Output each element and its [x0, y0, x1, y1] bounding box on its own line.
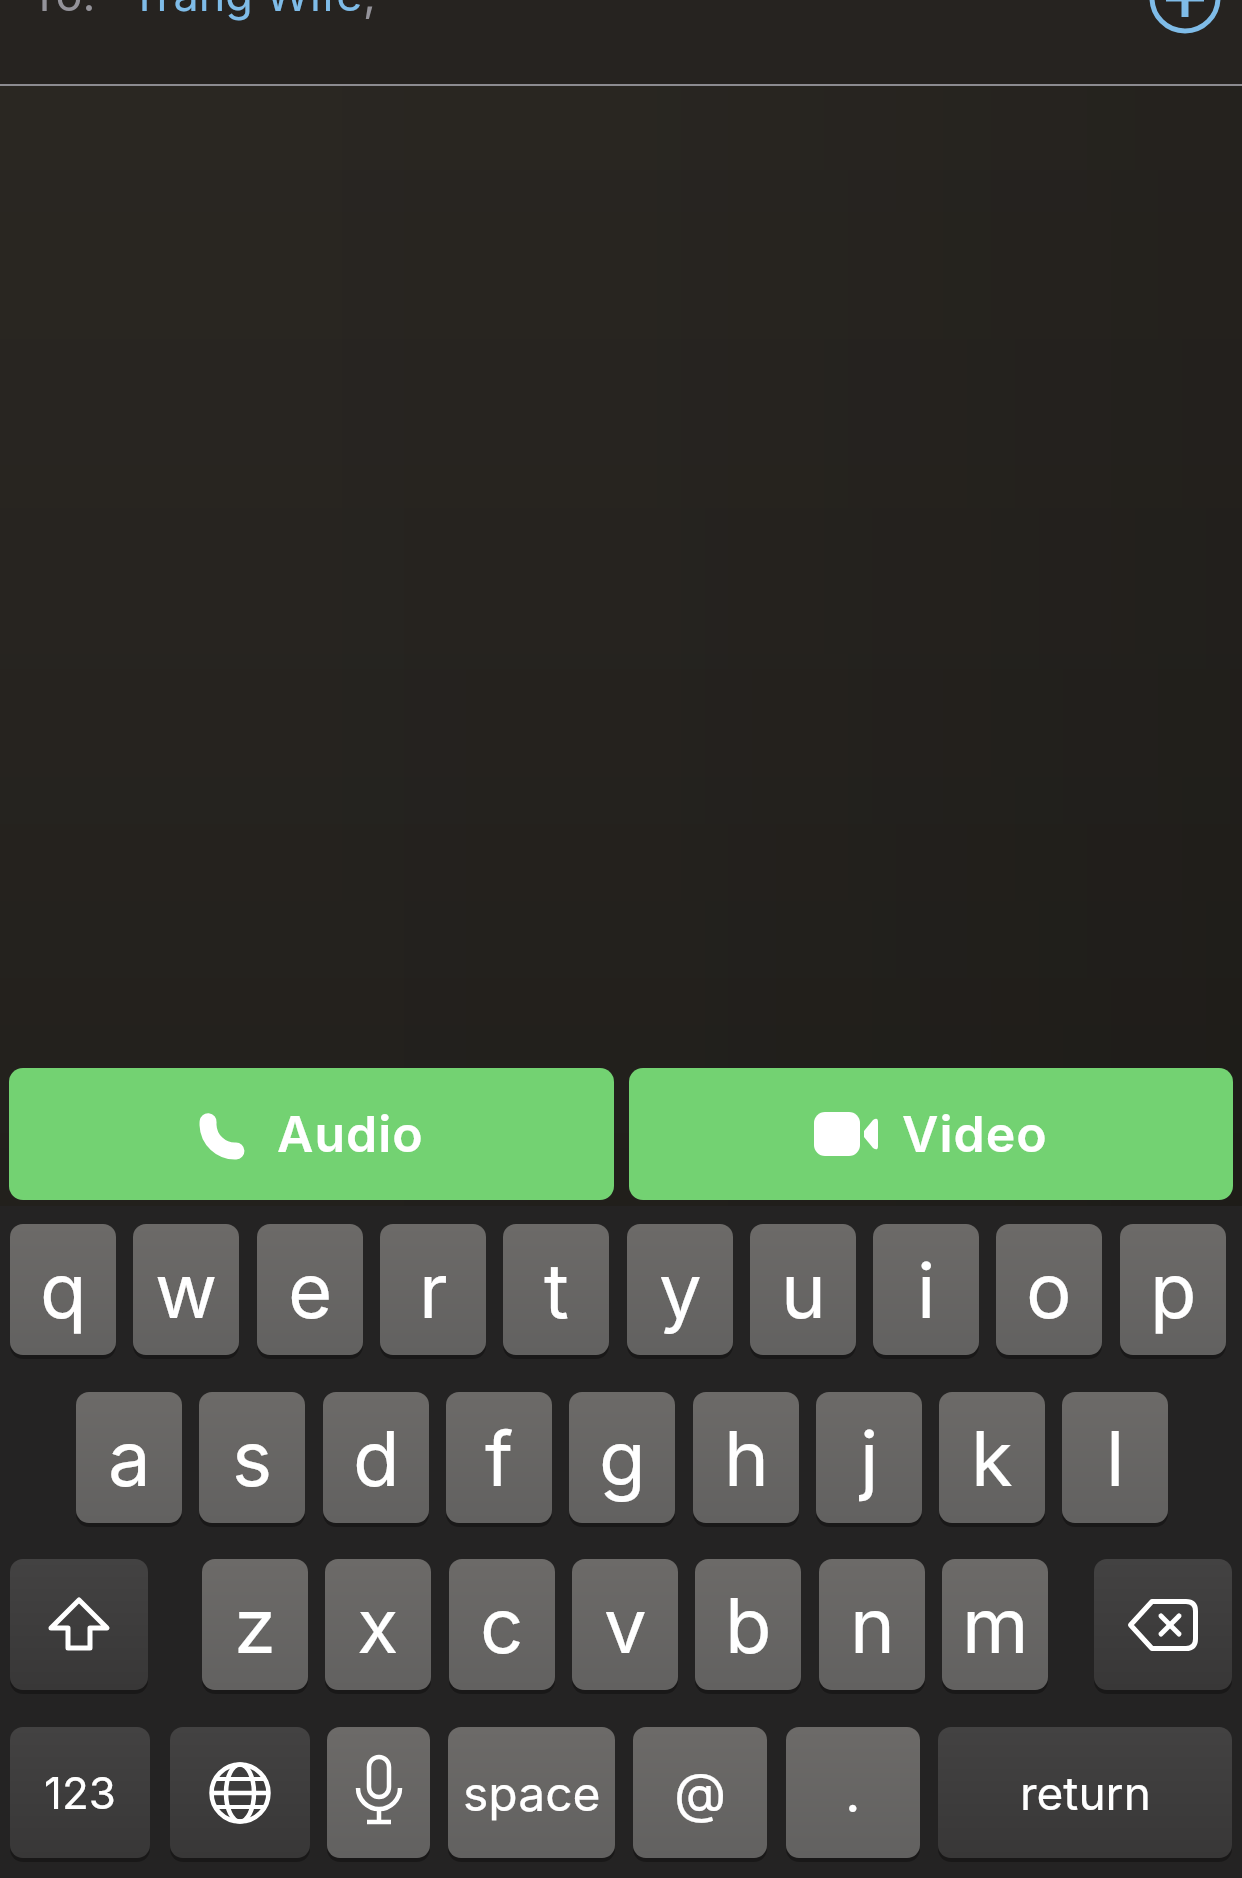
- button[interactable]: w: [133, 1224, 239, 1355]
- staticText: v: [604, 1579, 647, 1671]
- staticText: x: [357, 1579, 399, 1671]
- button[interactable]: u: [750, 1224, 856, 1355]
- button[interactable]: s: [199, 1392, 305, 1523]
- staticText: z: [234, 1579, 276, 1671]
- button[interactable]: [10, 1559, 148, 1690]
- button[interactable]: Video: [629, 1068, 1233, 1200]
- button[interactable]: e: [257, 1224, 363, 1355]
- staticText: e: [288, 1244, 333, 1336]
- staticText: l: [1106, 1412, 1125, 1504]
- staticText: t: [544, 1244, 569, 1336]
- button[interactable]: c: [449, 1559, 555, 1690]
- staticText: o: [1026, 1244, 1072, 1336]
- staticText: n: [850, 1579, 895, 1671]
- staticText: Audio: [277, 1104, 424, 1164]
- button[interactable]: Audio: [9, 1068, 614, 1200]
- button[interactable]: o: [996, 1224, 1102, 1355]
- staticText: j: [860, 1412, 879, 1504]
- button[interactable]: l: [1062, 1392, 1168, 1523]
- button[interactable]: y: [627, 1224, 733, 1355]
- button[interactable]: m: [942, 1559, 1048, 1690]
- button[interactable]: g: [569, 1392, 675, 1523]
- button[interactable]: space: [448, 1727, 615, 1858]
- button[interactable]: z: [202, 1559, 308, 1690]
- button[interactable]: x: [325, 1559, 431, 1690]
- button[interactable]: a: [76, 1392, 182, 1523]
- button[interactable]: [1152, 0, 1218, 40]
- staticText: f: [485, 1412, 514, 1504]
- staticText: @: [674, 1760, 727, 1825]
- button[interactable]: i: [873, 1224, 979, 1355]
- button[interactable]: [170, 1727, 310, 1858]
- button[interactable]: h: [693, 1392, 799, 1523]
- staticText: p: [1150, 1244, 1197, 1336]
- staticText: g: [599, 1412, 646, 1504]
- button[interactable]: n: [819, 1559, 925, 1690]
- button[interactable]: j: [816, 1392, 922, 1523]
- staticText: return: [1020, 1765, 1151, 1821]
- staticText: r: [419, 1244, 448, 1336]
- staticText: space: [463, 1764, 601, 1822]
- staticText: 123: [44, 1766, 116, 1819]
- staticText: m: [962, 1579, 1029, 1671]
- button[interactable]: 123: [10, 1727, 150, 1858]
- staticText: i: [917, 1244, 936, 1336]
- staticText: w: [155, 1244, 218, 1336]
- button[interactable]: [327, 1727, 430, 1858]
- staticText: q: [40, 1244, 87, 1336]
- staticText: d: [353, 1412, 400, 1504]
- staticText: h: [724, 1412, 769, 1504]
- button[interactable]: k: [939, 1392, 1045, 1523]
- staticText: Trang Wife: [130, 0, 363, 21]
- staticText: c: [480, 1579, 524, 1671]
- staticText: k: [971, 1412, 1013, 1504]
- staticText: u: [781, 1244, 826, 1336]
- staticText: a: [108, 1412, 151, 1504]
- button[interactable]: r: [380, 1224, 486, 1355]
- button[interactable]: v: [572, 1559, 678, 1690]
- button[interactable]: return: [938, 1727, 1232, 1858]
- staticText: s: [232, 1412, 273, 1504]
- staticText: y: [659, 1244, 702, 1336]
- button[interactable]: d: [323, 1392, 429, 1523]
- staticText: Video: [902, 1104, 1048, 1164]
- staticText: .: [845, 1760, 861, 1825]
- staticText: To:: [30, 0, 96, 21]
- button[interactable]: f: [446, 1392, 552, 1523]
- button[interactable]: t: [503, 1224, 609, 1355]
- button[interactable]: [1094, 1559, 1232, 1690]
- staticText: ,: [363, 0, 376, 21]
- button[interactable]: p: [1120, 1224, 1226, 1355]
- staticText: b: [725, 1579, 772, 1671]
- button[interactable]: .: [786, 1727, 920, 1858]
- button[interactable]: b: [695, 1559, 801, 1690]
- button[interactable]: q: [10, 1224, 116, 1355]
- button[interactable]: @: [633, 1727, 767, 1858]
